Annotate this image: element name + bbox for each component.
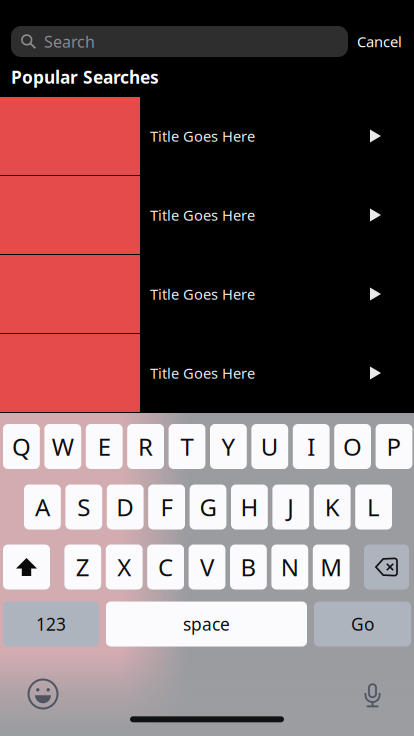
staticText: V bbox=[200, 551, 214, 583]
button[interactable]: Cancel bbox=[348, 26, 413, 57]
staticText: X bbox=[117, 551, 131, 583]
staticText: C bbox=[158, 551, 173, 583]
button[interactable]: I bbox=[293, 424, 330, 469]
button[interactable]: Title Goes Here bbox=[0, 176, 414, 254]
staticText: Q bbox=[12, 431, 31, 462]
staticText: I bbox=[307, 431, 315, 462]
staticText: Y bbox=[221, 431, 235, 462]
button[interactable]: B bbox=[230, 544, 267, 589]
button[interactable]: S bbox=[65, 484, 102, 529]
button[interactable]: Q bbox=[3, 424, 40, 469]
staticText: Title Goes Here bbox=[150, 205, 255, 225]
staticText: T bbox=[180, 431, 193, 462]
button[interactable]: A bbox=[24, 484, 61, 529]
button[interactable]: T bbox=[169, 424, 205, 469]
staticText: K bbox=[325, 491, 340, 523]
button[interactable]: H bbox=[231, 484, 268, 529]
button[interactable]: Go bbox=[314, 601, 411, 646]
button[interactable]: G bbox=[190, 484, 226, 529]
staticText: Go bbox=[351, 612, 374, 635]
button[interactable]: Title Goes Here bbox=[0, 97, 414, 175]
staticText: U bbox=[261, 431, 279, 462]
staticText: P bbox=[386, 431, 401, 462]
button[interactable]: O bbox=[334, 424, 371, 469]
staticText: S bbox=[77, 491, 90, 523]
staticText: A bbox=[35, 491, 50, 523]
button[interactable]: J bbox=[272, 484, 309, 529]
staticText: Title Goes Here bbox=[150, 284, 255, 304]
button[interactable]: Shift bbox=[3, 544, 50, 589]
button[interactable]: W bbox=[44, 424, 81, 469]
button[interactable]: Dictation bbox=[350, 672, 394, 716]
button[interactable]: D bbox=[107, 484, 144, 529]
staticText: Title Goes Here bbox=[150, 363, 255, 383]
staticText: M bbox=[320, 551, 342, 583]
staticText: Search bbox=[44, 31, 95, 52]
button[interactable]: space bbox=[106, 601, 307, 646]
button[interactable]: Delete bbox=[364, 544, 409, 589]
staticText: space bbox=[183, 612, 230, 635]
staticText: N bbox=[281, 551, 299, 583]
button[interactable]: M bbox=[313, 544, 350, 589]
button[interactable]: U bbox=[251, 424, 288, 469]
button[interactable]: Emoji keyboard bbox=[21, 672, 65, 716]
staticText: 123 bbox=[36, 612, 66, 635]
button[interactable]: K bbox=[314, 484, 351, 529]
button[interactable]: F bbox=[148, 484, 185, 529]
staticText: B bbox=[240, 551, 256, 583]
button[interactable]: V bbox=[189, 544, 225, 589]
staticText: Title Goes Here bbox=[150, 126, 255, 146]
staticText: F bbox=[161, 491, 173, 523]
button[interactable]: P bbox=[376, 424, 412, 469]
button[interactable]: Z bbox=[64, 544, 101, 589]
button[interactable]: 123 bbox=[3, 601, 99, 646]
button[interactable]: Title Goes Here bbox=[0, 255, 414, 333]
staticText: W bbox=[52, 431, 74, 462]
button[interactable]: R bbox=[127, 424, 164, 469]
button[interactable]: Title Goes Here bbox=[0, 334, 414, 412]
button[interactable]: N bbox=[271, 544, 308, 589]
staticText: O bbox=[343, 431, 362, 462]
staticText: G bbox=[199, 491, 216, 523]
button[interactable]: X bbox=[106, 544, 143, 589]
staticText: R bbox=[138, 431, 153, 462]
staticText: Cancel bbox=[357, 32, 402, 51]
staticText: Popular Searches bbox=[11, 65, 159, 88]
button[interactable]: Y bbox=[210, 424, 247, 469]
staticText: H bbox=[240, 491, 258, 523]
staticText: J bbox=[287, 491, 294, 523]
staticText: E bbox=[98, 431, 111, 462]
button[interactable]: E bbox=[86, 424, 123, 469]
staticText: L bbox=[367, 491, 380, 523]
button[interactable]: L bbox=[355, 484, 392, 529]
staticText: D bbox=[116, 491, 134, 523]
button[interactable]: C bbox=[147, 544, 184, 589]
staticText: Z bbox=[76, 551, 90, 583]
